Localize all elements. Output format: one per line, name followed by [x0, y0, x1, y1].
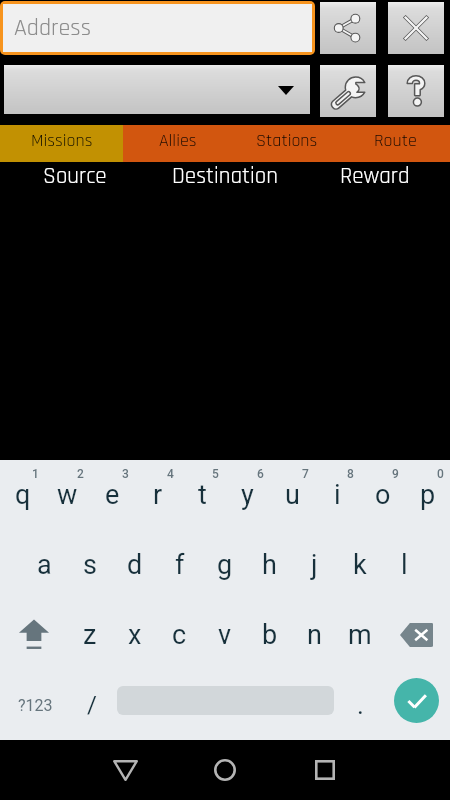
- staticText: x: [128, 619, 142, 651]
- button[interactable]: f: [157, 530, 202, 600]
- staticText: b: [262, 619, 278, 651]
- staticText: w: [57, 479, 78, 511]
- button[interactable]: d: [112, 530, 157, 600]
- staticText: ?123: [18, 696, 53, 715]
- staticText: a: [37, 549, 52, 581]
- button[interactable]: Select: [4, 65, 310, 114]
- button[interactable]: w: [45, 460, 90, 530]
- staticText: Source: [43, 162, 107, 191]
- button[interactable]: b: [247, 600, 292, 670]
- button[interactable]: Help: [388, 65, 444, 117]
- button[interactable]: i: [315, 460, 360, 530]
- button[interactable]: Missions: [0, 125, 123, 162]
- staticText: f: [175, 549, 185, 581]
- button[interactable]: Back: [95, 750, 155, 790]
- button[interactable]: o: [360, 460, 405, 530]
- button[interactable]: z: [67, 600, 112, 670]
- staticText: 6: [257, 467, 264, 481]
- button[interactable]: l: [382, 530, 427, 600]
- staticText: 1: [32, 467, 39, 481]
- button[interactable]: Home: [195, 750, 255, 790]
- button[interactable]: Enter: [394, 678, 439, 723]
- staticText: 3: [122, 467, 129, 481]
- button[interactable]: Address: [3, 4, 312, 52]
- staticText: s: [83, 549, 97, 581]
- staticText: .: [357, 690, 364, 720]
- staticText: Route: [374, 129, 417, 152]
- button[interactable]: Settings: [320, 65, 376, 117]
- staticText: e: [105, 479, 120, 511]
- staticText: 8: [347, 467, 354, 481]
- staticText: p: [420, 479, 436, 511]
- button[interactable]: j: [292, 530, 337, 600]
- staticText: Missions: [31, 129, 93, 152]
- button[interactable]: t: [180, 460, 225, 530]
- button[interactable]: Share: [320, 2, 376, 54]
- button[interactable]: e: [90, 460, 135, 530]
- staticText: t: [198, 479, 207, 511]
- button[interactable]: n: [292, 600, 337, 670]
- staticText: 2: [77, 467, 84, 481]
- button[interactable]: Recents: [295, 750, 355, 790]
- button[interactable]: a: [22, 530, 67, 600]
- staticText: m: [348, 619, 372, 651]
- button[interactable]: /: [70, 670, 114, 740]
- staticText: j: [311, 549, 318, 581]
- staticText: l: [401, 549, 408, 581]
- button[interactable]: x: [112, 600, 157, 670]
- button[interactable]: Route: [341, 125, 450, 162]
- staticText: d: [127, 549, 143, 581]
- button[interactable]: Stations: [232, 125, 341, 162]
- staticText: Allies: [159, 129, 197, 152]
- staticText: 9: [392, 467, 399, 481]
- button[interactable]: .: [338, 670, 382, 740]
- button[interactable]: k: [337, 530, 382, 600]
- staticText: r: [153, 479, 163, 511]
- staticText: k: [353, 549, 367, 581]
- staticText: Destination: [172, 162, 278, 191]
- staticText: 7: [302, 467, 309, 481]
- button[interactable]: q: [0, 460, 45, 530]
- staticText: Stations: [256, 129, 318, 152]
- button[interactable]: Shift: [0, 600, 67, 670]
- button[interactable]: Backspace: [383, 600, 450, 670]
- button[interactable]: Allies: [123, 125, 232, 162]
- staticText: z: [83, 619, 97, 651]
- staticText: y: [241, 479, 254, 511]
- staticText: n: [307, 619, 322, 651]
- staticText: 5: [212, 467, 219, 481]
- staticText: 4: [167, 467, 174, 481]
- button[interactable]: m: [337, 600, 382, 670]
- button[interactable]: c: [157, 600, 202, 670]
- staticText: o: [375, 479, 391, 511]
- staticText: Address: [14, 13, 91, 44]
- button[interactable]: s: [67, 530, 112, 600]
- staticText: Reward: [340, 162, 410, 191]
- staticText: v: [218, 619, 232, 651]
- staticText: c: [172, 619, 187, 651]
- button[interactable]: p: [405, 460, 450, 530]
- staticText: h: [262, 549, 277, 581]
- button[interactable]: ?123: [0, 670, 70, 740]
- staticText: g: [217, 549, 233, 581]
- button[interactable]: Close: [388, 2, 444, 54]
- button[interactable]: r: [135, 460, 180, 530]
- staticText: q: [15, 479, 31, 511]
- button[interactable]: u: [270, 460, 315, 530]
- button[interactable]: v: [202, 600, 247, 670]
- button[interactable]: y: [225, 460, 270, 530]
- button[interactable]: g: [202, 530, 247, 600]
- staticText: i: [334, 479, 341, 511]
- staticText: /: [87, 691, 97, 719]
- staticText: u: [285, 479, 300, 511]
- staticText: 0: [437, 467, 444, 481]
- button[interactable]: h: [247, 530, 292, 600]
